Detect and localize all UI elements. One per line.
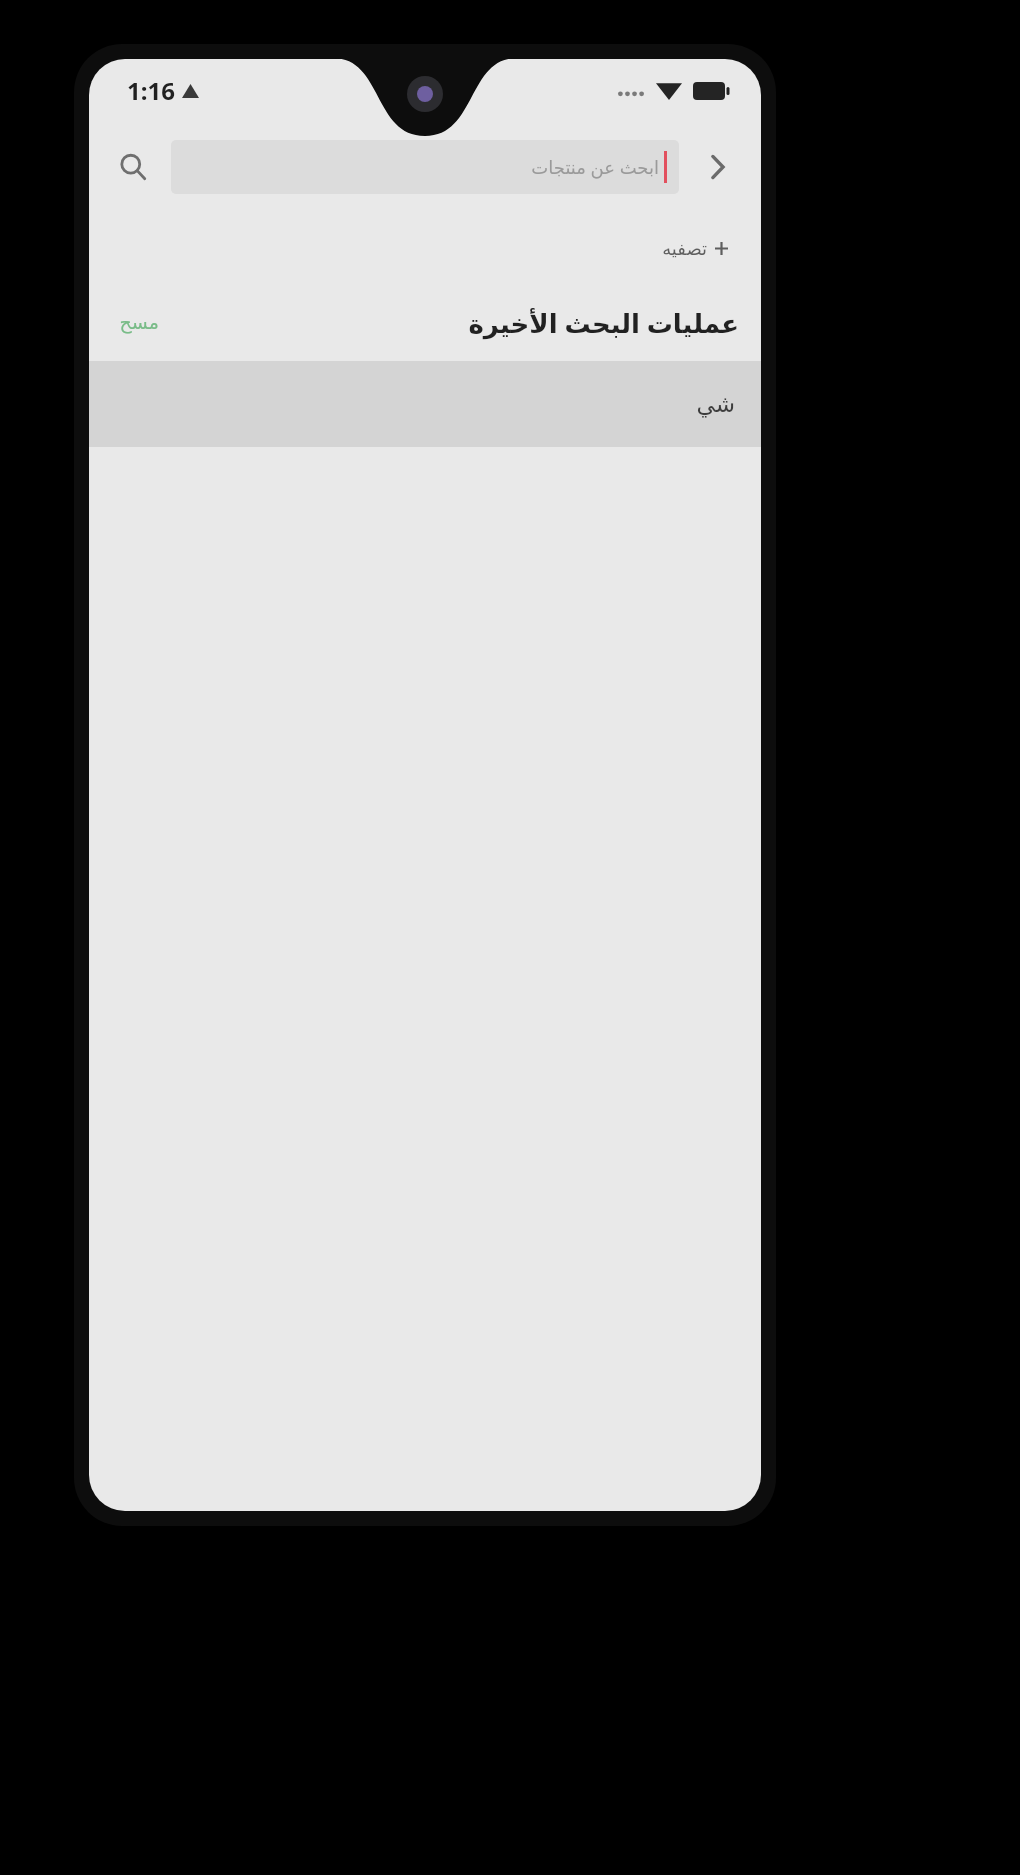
staticText: شي (696, 391, 735, 418)
staticText: ابحث عن منتجات (531, 155, 659, 180)
button[interactable]: Search (103, 137, 163, 197)
button[interactable]: شي (89, 361, 761, 447)
button[interactable]: تصفيه (654, 232, 737, 265)
button[interactable]: مسح (111, 305, 167, 339)
button[interactable]: ابحث عن منتجات (171, 140, 679, 194)
staticText: مسح (119, 311, 159, 333)
button[interactable]: Back (687, 137, 747, 197)
staticText: 1:16 (127, 74, 175, 107)
staticText: تصفيه (662, 238, 707, 259)
staticText: عمليات البحث الأخيرة (468, 305, 739, 340)
